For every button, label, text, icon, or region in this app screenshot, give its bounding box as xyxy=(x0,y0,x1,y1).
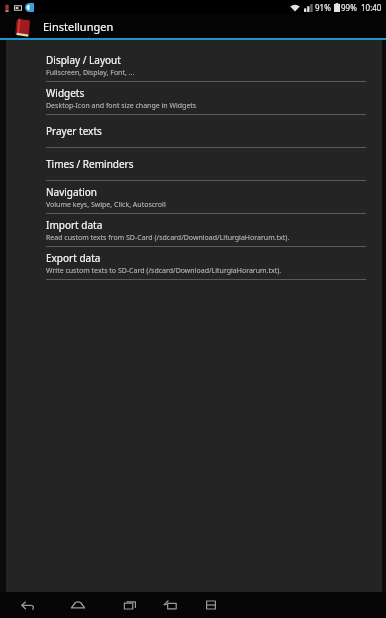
button[interactable]: Recent apps xyxy=(117,592,143,618)
staticText: Prayer texts xyxy=(46,124,102,138)
staticText: Export data xyxy=(46,251,101,265)
button[interactable]: Rotate screen xyxy=(157,592,183,618)
button[interactable]: Import data xyxy=(6,214,382,246)
button[interactable]: Navigation xyxy=(6,181,382,213)
button[interactable]: Widgets xyxy=(6,82,382,114)
staticText: 91% xyxy=(315,2,331,13)
button[interactable]: Export data xyxy=(6,247,382,279)
staticText: Einstellungen xyxy=(43,19,114,34)
staticText: Desktop-Icon and font size change in Wid… xyxy=(46,101,197,111)
staticText: Import data xyxy=(46,218,103,232)
staticText: 10:40 xyxy=(361,2,382,13)
button[interactable]: Home xyxy=(65,592,91,618)
staticText: Fullscreen, Display, Font, ... xyxy=(46,68,135,78)
staticText: 99% xyxy=(341,2,357,13)
button[interactable]: Split screen xyxy=(198,592,224,618)
staticText: Times / Reminders xyxy=(46,157,134,171)
staticText: Navigation xyxy=(46,185,98,199)
button[interactable]: Prayer texts xyxy=(6,115,382,147)
staticText: Display / Layout xyxy=(46,53,121,67)
staticText: Volume keys, Swipe, Click, Autoscroll xyxy=(46,200,166,210)
button[interactable]: Display / Layout xyxy=(6,49,382,81)
staticText: Write custom texts to SD-Card (/sdcard/D… xyxy=(46,266,282,276)
staticText: Widgets xyxy=(46,86,85,100)
staticText: Read custom texts from SD-Card (/sdcard/… xyxy=(46,233,290,243)
button[interactable]: Times / Reminders xyxy=(6,148,382,180)
button[interactable]: Back xyxy=(14,592,40,618)
